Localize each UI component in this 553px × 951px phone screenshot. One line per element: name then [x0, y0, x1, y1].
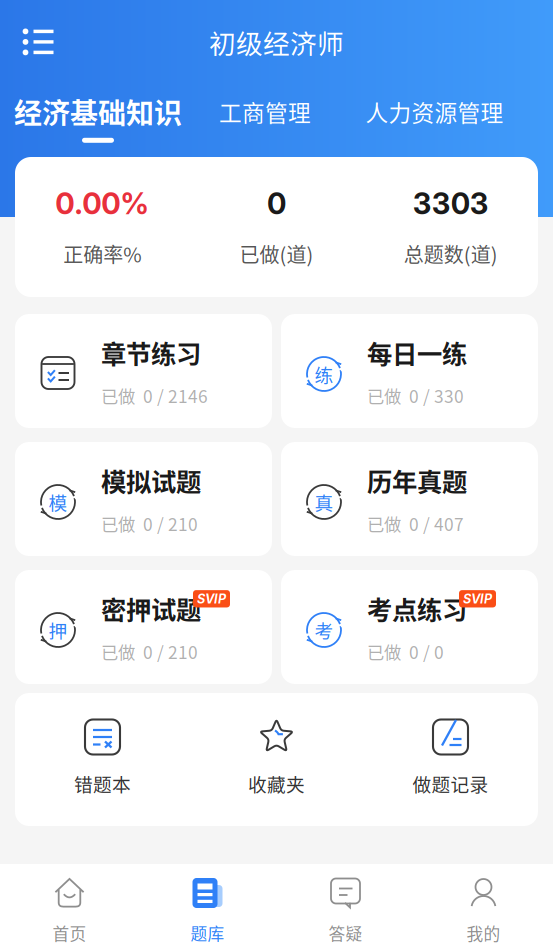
staticText: SVIP [197, 591, 226, 606]
staticText: 已做 0 / 2146 [101, 383, 208, 408]
staticText: 已做 0 / 210 [101, 639, 198, 664]
staticText: 考点练习 [367, 590, 467, 627]
staticText: 0 [267, 186, 286, 221]
staticText: 模拟试题 [101, 462, 201, 499]
staticText: 题库 [190, 921, 224, 945]
staticText: 人力资源管理 [365, 95, 503, 128]
staticText: 练 [314, 360, 333, 387]
staticText: 我的 [466, 921, 500, 945]
button[interactable]: 答疑 [276, 864, 414, 951]
staticText: 每日一练 [367, 334, 467, 371]
button[interactable]: 收藏夹 [189, 693, 363, 826]
button[interactable]: 真 [281, 442, 538, 556]
button[interactable]: 模 [15, 442, 272, 556]
button[interactable]: 考 [281, 570, 538, 684]
staticText: 首页 [52, 921, 86, 945]
button[interactable]: 题库 [138, 864, 276, 951]
staticText: 密押试题 [101, 590, 201, 627]
button[interactable]: Menu [8, 0, 68, 84]
button[interactable]: 章节练习 [15, 314, 272, 428]
staticText: 0.00% [55, 186, 149, 221]
staticText: 初级经济师 [209, 23, 344, 61]
staticText: 已做(道) [239, 239, 313, 268]
button[interactable]: 错题本 [15, 693, 189, 826]
button[interactable]: 经济基础知识 [0, 97, 196, 147]
staticText: 已做 0 / 330 [367, 383, 464, 408]
button[interactable]: 我的 [414, 864, 552, 951]
button[interactable]: 做题记录 [363, 693, 537, 826]
staticText: 真 [314, 488, 333, 515]
button[interactable]: 练 [281, 314, 538, 428]
staticText: 经济基础知识 [14, 91, 182, 132]
staticText: SVIP [463, 591, 492, 606]
staticText: 答疑 [328, 921, 362, 945]
staticText: 历年真题 [367, 462, 467, 499]
staticText: 3303 [413, 186, 489, 221]
button[interactable]: 人力资源管理 [334, 97, 535, 147]
staticText: 收藏夹 [248, 770, 305, 797]
staticText: 正确率% [63, 239, 141, 268]
button[interactable]: 押 [15, 570, 272, 684]
staticText: 总题数(道) [404, 239, 498, 268]
button[interactable]: 工商管理 [196, 97, 334, 147]
staticText: 押 [48, 616, 67, 643]
staticText: 做题记录 [412, 770, 488, 797]
button[interactable]: 首页 [0, 864, 138, 951]
staticText: 已做 0 / 407 [367, 511, 464, 536]
staticText: 考 [314, 616, 333, 643]
staticText: 模 [48, 488, 67, 515]
staticText: 已做 0 / 210 [101, 511, 198, 536]
staticText: 错题本 [74, 770, 131, 797]
staticText: 已做 0 / 0 [367, 639, 444, 664]
staticText: 章节练习 [101, 334, 201, 371]
staticText: 工商管理 [219, 95, 311, 128]
